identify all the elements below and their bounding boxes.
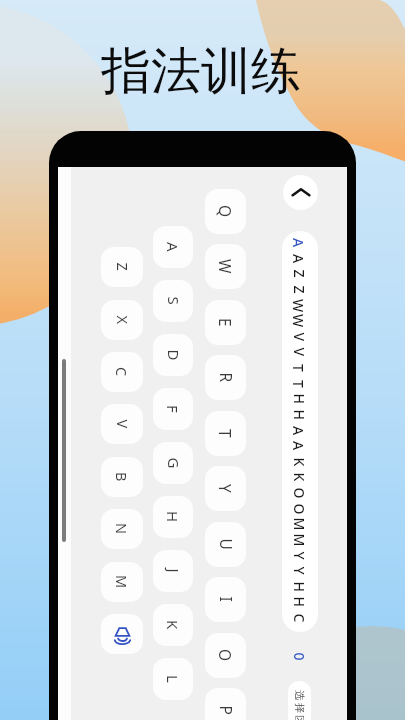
button[interactable]: L — [153, 658, 193, 700]
staticText: Y — [215, 484, 236, 493]
staticText: X — [112, 315, 132, 324]
staticText: E — [215, 318, 236, 327]
button[interactable]: M — [101, 562, 143, 602]
button[interactable]: X — [101, 300, 143, 340]
staticText: 选 — [293, 690, 306, 701]
staticText: Y — [292, 566, 308, 575]
staticText: S — [163, 296, 183, 305]
staticText: K — [163, 620, 183, 630]
button[interactable]: W — [205, 244, 246, 289]
staticText: H — [163, 511, 183, 523]
button[interactable]: Y — [205, 466, 246, 511]
button[interactable]: G — [153, 442, 193, 484]
staticText: V — [112, 419, 132, 428]
staticText: B — [112, 472, 132, 482]
button[interactable]: Q — [205, 189, 246, 234]
staticText: N — [112, 523, 132, 535]
staticText: A — [292, 238, 308, 248]
staticText: 0 — [292, 652, 308, 661]
button[interactable]: F — [153, 388, 193, 430]
staticText: T — [292, 380, 308, 388]
staticText: Y — [292, 551, 308, 560]
button[interactable]: U — [205, 522, 246, 567]
button[interactable]: O — [205, 633, 246, 678]
button[interactable]: N — [101, 509, 143, 549]
button[interactable]: C — [101, 352, 143, 392]
staticText: G — [163, 457, 183, 468]
staticText: W — [292, 299, 308, 313]
staticText: M — [292, 533, 308, 546]
staticText: H — [292, 581, 308, 592]
button[interactable]: Shift — [101, 614, 143, 654]
button[interactable]: D — [153, 334, 193, 376]
button[interactable]: V — [101, 404, 143, 444]
staticText: D — [163, 349, 183, 360]
staticText: Q — [215, 205, 236, 218]
staticText: K — [292, 472, 308, 481]
staticText: W — [215, 259, 236, 274]
staticText: W — [292, 314, 308, 328]
staticText: L — [163, 675, 183, 683]
button[interactable]: Z — [101, 247, 143, 287]
staticText: O — [292, 503, 308, 514]
staticText: Z — [292, 269, 308, 278]
button[interactable]: T — [205, 411, 246, 456]
staticText: Z — [112, 262, 132, 271]
staticText: T — [215, 429, 236, 438]
staticText: C — [292, 613, 308, 622]
button[interactable]: Collapse — [283, 175, 318, 210]
button[interactable]: J — [153, 550, 193, 592]
button[interactable]: S — [153, 280, 193, 322]
button[interactable]: 选 — [288, 681, 311, 720]
staticText: J — [163, 568, 183, 573]
staticText: M — [112, 575, 132, 589]
staticText: Z — [292, 285, 308, 294]
staticText: V — [292, 347, 308, 356]
staticText: A — [292, 426, 308, 436]
button[interactable]: I — [205, 577, 246, 622]
button[interactable]: E — [205, 300, 246, 345]
staticText: A — [163, 242, 183, 252]
staticText: A — [292, 441, 308, 451]
button[interactable]: H — [153, 496, 193, 538]
staticText: T — [292, 364, 308, 372]
staticText: I — [215, 596, 236, 602]
staticText: F — [163, 405, 183, 413]
staticText: 择 — [293, 703, 306, 714]
staticText: U — [215, 538, 236, 550]
staticText: O — [215, 649, 236, 662]
staticText: M — [292, 517, 308, 530]
staticText: K — [292, 457, 308, 466]
staticText: O — [292, 487, 308, 498]
staticText: R — [215, 372, 236, 382]
button[interactable]: B — [101, 457, 143, 497]
staticText: H — [292, 409, 308, 420]
button[interactable]: P — [205, 688, 246, 720]
button[interactable]: K — [153, 604, 193, 646]
staticText: 区 — [293, 715, 306, 720]
staticText: H — [292, 393, 308, 404]
staticText: C — [112, 367, 132, 377]
staticText: P — [215, 705, 236, 715]
staticText: V — [292, 332, 308, 341]
button[interactable]: A — [153, 226, 193, 268]
staticText: 指法训练 — [101, 40, 301, 103]
staticText: H — [292, 596, 308, 607]
button[interactable]: R — [205, 355, 246, 400]
staticText: A — [292, 254, 308, 264]
